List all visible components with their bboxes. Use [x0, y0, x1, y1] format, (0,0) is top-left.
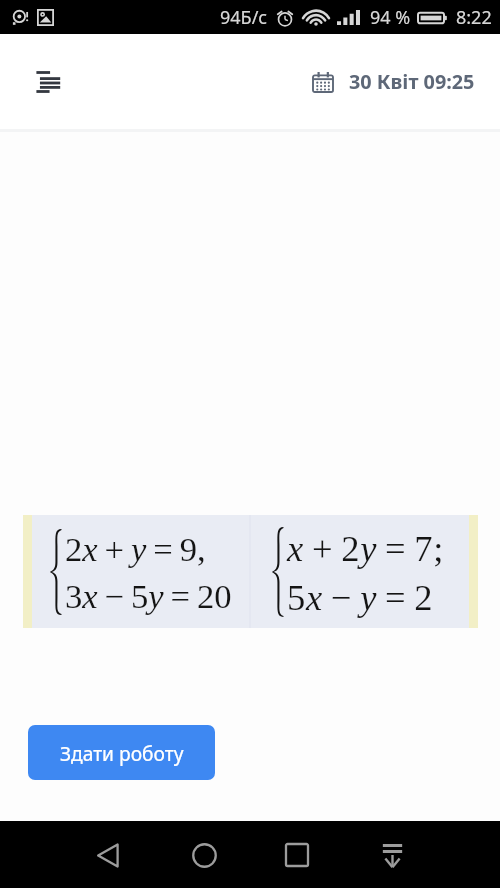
staticText: Здати роботу: [60, 740, 184, 766]
button[interactable]: Hide keyboard: [364, 827, 420, 883]
staticText: 30 Квіт 09:25: [349, 68, 475, 95]
staticText: 94 %: [370, 5, 411, 30]
staticText: 94Б/c: [220, 5, 267, 30]
button[interactable]: Back: [80, 827, 136, 883]
button[interactable]: 30 Квіт 09:25: [306, 62, 481, 101]
staticText: 5x − y = 2: [287, 577, 434, 617]
button[interactable]: Home: [176, 827, 232, 883]
staticText: 3x − 5y = 20: [65, 577, 232, 615]
button[interactable]: Recent apps: [269, 827, 325, 883]
staticText: 8:22: [456, 5, 492, 30]
button[interactable]: Здати роботу: [28, 725, 215, 780]
staticText: x + 2y = 7;: [287, 528, 445, 568]
button[interactable]: Menu: [25, 59, 71, 105]
staticText: 2x + y = 9,: [65, 530, 206, 568]
